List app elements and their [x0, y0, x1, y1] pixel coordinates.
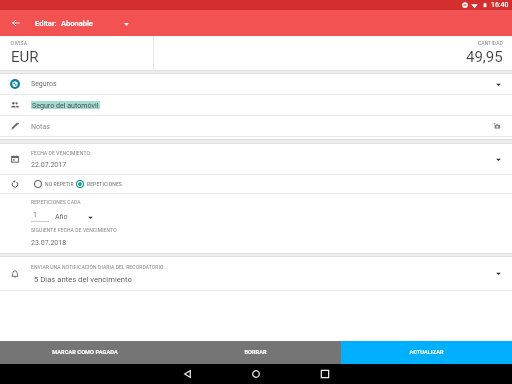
staticText: 1: [33, 211, 37, 219]
button[interactable]: Abonable: [61, 19, 129, 28]
button[interactable]: NO REPETIR: [34, 180, 74, 188]
staticText: 23.07.2018: [31, 239, 67, 247]
button[interactable]: Recent apps: [315, 364, 335, 384]
staticText: 16:40: [491, 1, 509, 9]
staticText: Abonable: [61, 19, 93, 28]
staticText: DIVISA: [11, 40, 28, 46]
button[interactable]: FECHA DE VENCIMIENTO:: [0, 144, 512, 174]
staticText: Seguro del automóvil: [32, 101, 99, 109]
staticText: CANTIDAD: [478, 40, 503, 46]
button[interactable]: Back: [0, 10, 31, 36]
button[interactable]: REPETICIONES: [76, 180, 122, 188]
staticText: FECHA DE VENCIMIENTO:: [31, 150, 92, 156]
staticText: BORRAR: [244, 349, 267, 356]
button[interactable]: Seguro del automóvil: [0, 95, 512, 115]
button[interactable]: CANTIDAD: [154, 36, 512, 70]
button[interactable]: ACTUALIZAR: [341, 341, 512, 364]
staticText: Editar:: [35, 19, 57, 28]
staticText: REPETICIONES: [87, 181, 122, 187]
staticText: ENVIAR UNA NOTIFICACIÓN DIARIA DEL RECOR…: [31, 264, 168, 270]
staticText: Seguros: [31, 80, 57, 88]
staticText: SIGUIENTE FECHA DE VENCIMIENTO: [31, 227, 117, 233]
staticText: EUR: [11, 48, 39, 66]
button[interactable]: ENVIAR UNA NOTIFICACIÓN DIARIA DEL RECOR…: [0, 257, 512, 290]
button[interactable]: Back: [177, 364, 197, 384]
staticText: 49,95: [466, 48, 503, 66]
button[interactable]: Home: [246, 364, 266, 384]
staticText: Notas: [31, 122, 50, 130]
staticText: MARCAR COMO PAGADA: [52, 349, 118, 356]
staticText: NO REPETIR: [45, 181, 74, 187]
staticText: ACTUALIZAR: [409, 349, 444, 356]
button[interactable]: Seguros: [0, 74, 512, 94]
button[interactable]: BORRAR: [170, 341, 341, 364]
button[interactable]: MARCAR COMO PAGADA: [0, 341, 170, 364]
staticText: Año: [55, 213, 68, 221]
button[interactable]: Notas: [0, 116, 512, 136]
staticText: 22.07.2017: [31, 161, 67, 169]
button[interactable]: DIVISA: [0, 36, 153, 70]
staticText: 5 Dias antes del vencimiento: [34, 275, 132, 284]
staticText: REPETICIONES CADA: [31, 199, 81, 205]
button[interactable]: Año: [55, 213, 93, 221]
